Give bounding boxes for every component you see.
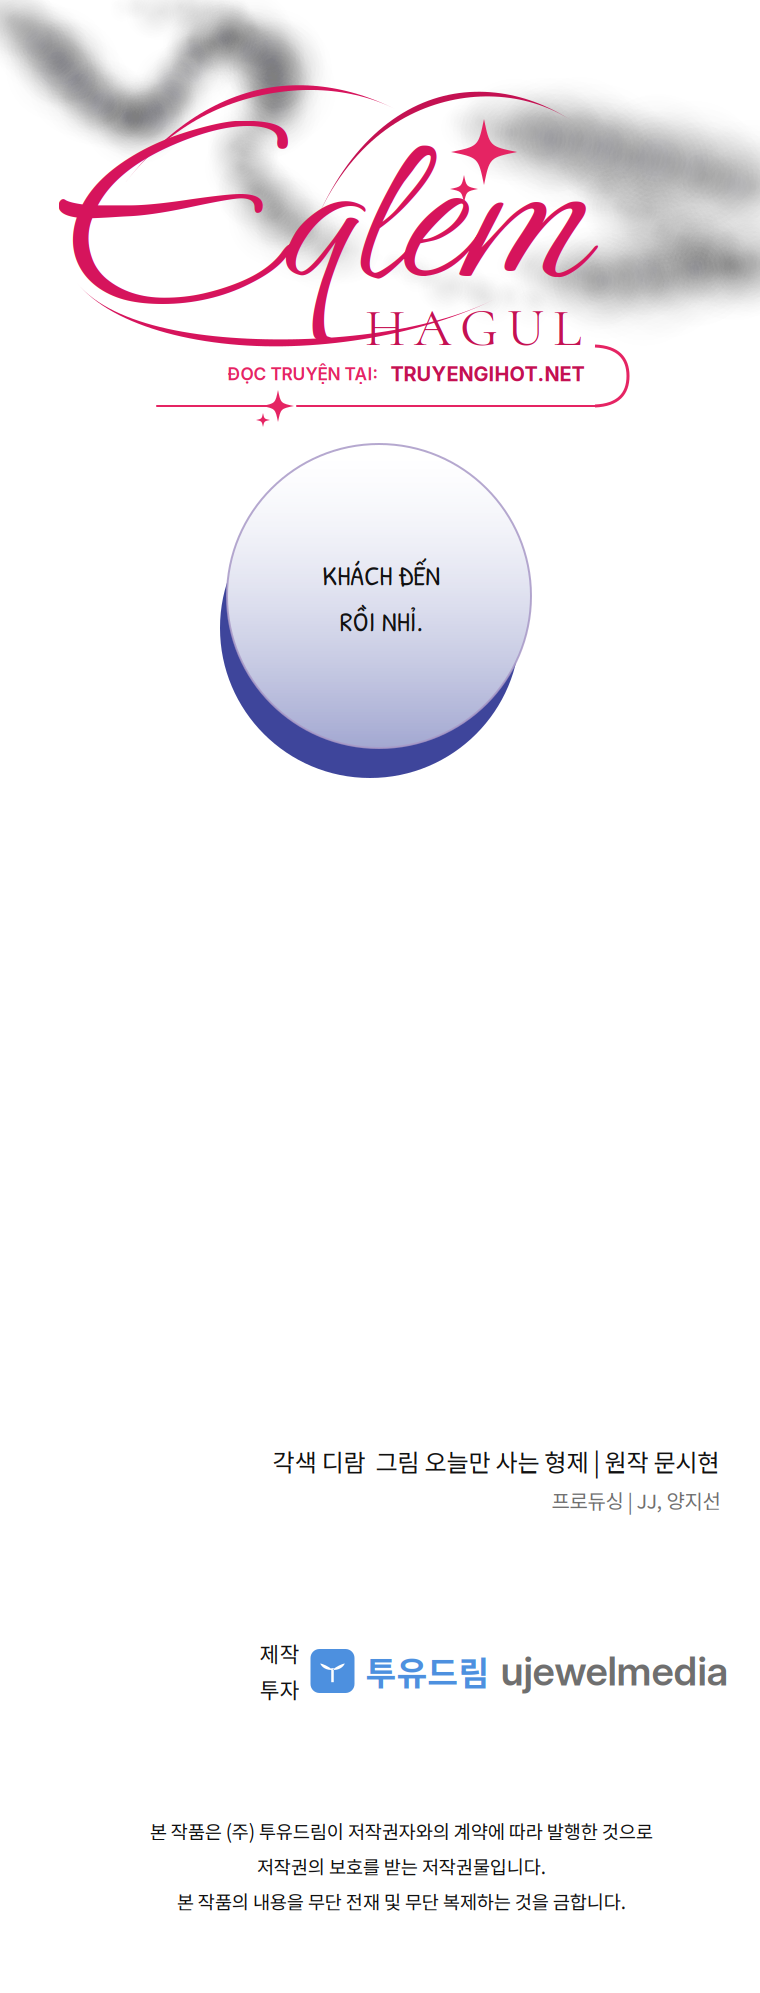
staticText: KHÁCH ĐẾN RỒI NHỈ. <box>322 556 440 640</box>
staticText: TRUYENGIHOT.NET <box>390 362 584 386</box>
staticText: 본 작품은 (주) 투유드림이 저작권자와의 계약에 따라 발행한 것으로 저작… <box>149 1817 652 1915</box>
staticText: ĐỌC TRUYỆN TẠI: <box>227 363 378 384</box>
staticText: HAGUL <box>365 296 581 360</box>
staticText: 각색 디람 그림 오늘만 사는 형제 | 원작 문시현 <box>272 1444 719 1478</box>
staticText: ujewelmedia <box>500 1647 728 1695</box>
staticText: Eqlem <box>71 58 582 370</box>
staticText: 제작 투자 <box>259 1638 299 1704</box>
staticText: 프로듀싱 | JJ, 양지선 <box>551 1485 720 1514</box>
staticText: 투유드림 <box>365 1647 489 1695</box>
